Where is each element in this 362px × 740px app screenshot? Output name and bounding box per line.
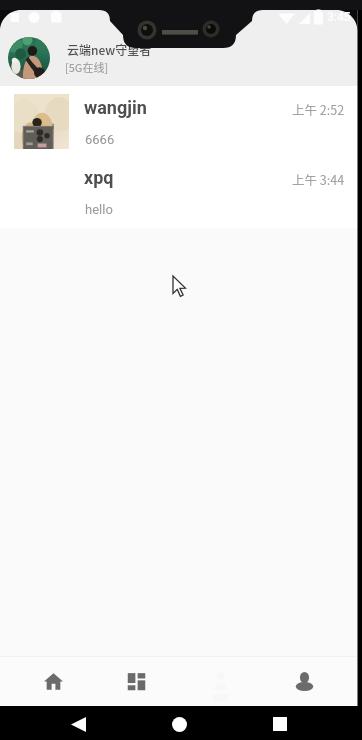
staticText: xpq xyxy=(84,167,114,188)
staticText: 云端new守望者 xyxy=(67,41,152,58)
button[interactable]: Apps xyxy=(95,656,178,706)
staticText: 3:45 xyxy=(327,10,351,24)
button[interactable]: Recents xyxy=(264,708,296,740)
staticText: wangjin xyxy=(84,97,147,118)
button[interactable]: Profile photo xyxy=(8,37,50,79)
button[interactable]: Home xyxy=(163,708,195,740)
button[interactable]: xpq xyxy=(0,156,362,226)
staticText: hello xyxy=(85,202,113,217)
staticText: 上午 2:52 xyxy=(292,100,345,118)
button[interactable]: Back xyxy=(62,708,94,740)
staticText: 6666 xyxy=(85,132,115,147)
button[interactable]: Profile xyxy=(262,656,346,706)
button[interactable]: wangjin xyxy=(0,86,362,156)
staticText: 上午 3:44 xyxy=(292,170,345,188)
staticText: [5G在线] xyxy=(65,59,109,75)
button[interactable]: Home xyxy=(12,656,95,706)
